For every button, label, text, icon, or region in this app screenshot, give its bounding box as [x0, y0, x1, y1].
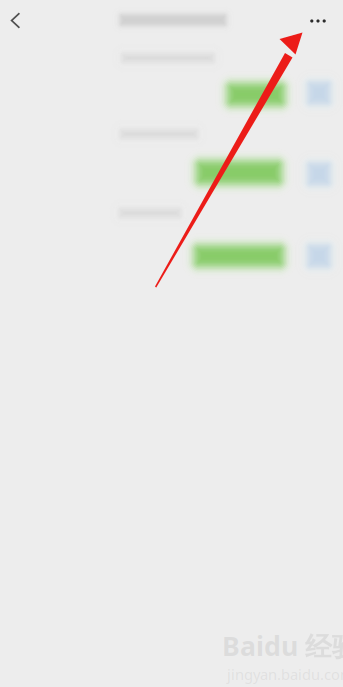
button[interactable]: Back: [0, 0, 42, 42]
button[interactable]: More: [296, 0, 340, 42]
staticText: jingyan.baidu.com: [227, 665, 343, 684]
staticText: Baidu 经验: [222, 628, 343, 664]
